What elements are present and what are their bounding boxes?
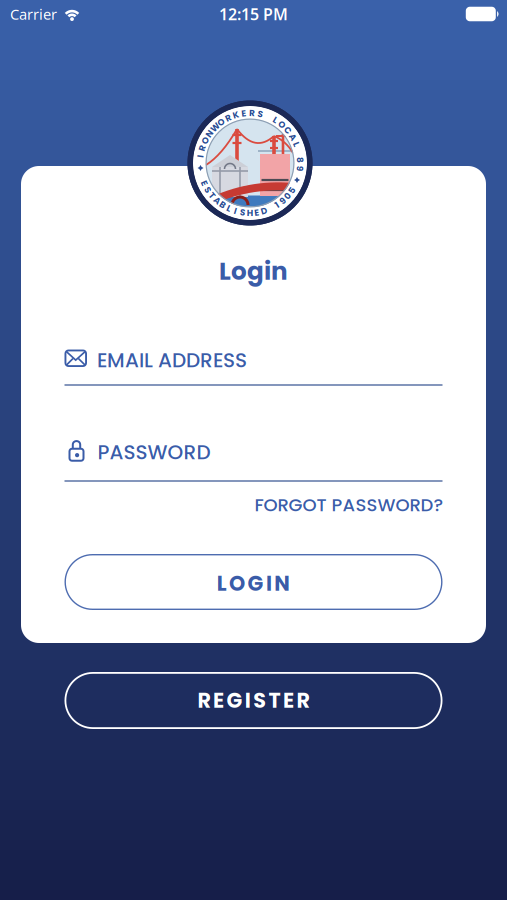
staticText: E bbox=[213, 686, 224, 715]
staticText: W bbox=[210, 121, 219, 133]
staticText: I bbox=[234, 205, 237, 217]
staticText: S bbox=[240, 206, 245, 219]
staticText: E bbox=[254, 206, 259, 219]
staticText: 8 bbox=[297, 154, 303, 166]
staticText: N bbox=[206, 127, 213, 140]
staticText: L bbox=[217, 569, 227, 598]
button[interactable]: FORGOT PASSWORD? bbox=[254, 492, 443, 518]
staticText: C bbox=[284, 124, 291, 136]
button[interactable]: R bbox=[64, 672, 442, 729]
staticText: R bbox=[199, 142, 205, 154]
staticText: B bbox=[220, 199, 226, 211]
button[interactable]: L bbox=[64, 554, 442, 610]
staticText: R bbox=[225, 112, 231, 124]
staticText: O bbox=[229, 569, 245, 598]
staticText: E bbox=[283, 686, 294, 715]
staticText: I bbox=[266, 569, 272, 598]
staticText: D bbox=[261, 205, 267, 217]
staticText: T bbox=[269, 686, 281, 715]
staticText: S bbox=[253, 686, 266, 715]
staticText: O bbox=[218, 116, 225, 128]
staticText: L bbox=[227, 202, 231, 214]
staticText: S bbox=[258, 108, 263, 120]
staticText: PASSWORD bbox=[97, 438, 210, 466]
staticText: S bbox=[205, 183, 210, 196]
staticText: I bbox=[199, 150, 202, 162]
staticText: 0 bbox=[285, 190, 291, 202]
staticText: 9 bbox=[297, 162, 302, 174]
staticText: H bbox=[247, 207, 253, 219]
staticText: K bbox=[233, 109, 239, 121]
staticText: T bbox=[209, 189, 214, 201]
staticText: 5 bbox=[289, 184, 295, 196]
staticText: Login bbox=[219, 254, 288, 288]
staticText: A bbox=[214, 194, 220, 207]
staticText: FORGOT PASSWORD? bbox=[254, 492, 443, 518]
staticText: E bbox=[202, 177, 207, 189]
staticText: 12:15 PM bbox=[219, 3, 288, 25]
staticText: EMAIL ADDRESS bbox=[97, 346, 247, 374]
staticText: R bbox=[198, 686, 211, 715]
staticText: G bbox=[226, 686, 242, 715]
staticText: E bbox=[241, 107, 246, 119]
staticText: R bbox=[296, 686, 309, 715]
button[interactable]: Email address bbox=[64, 347, 442, 386]
staticText: O bbox=[278, 118, 285, 131]
staticText: 1 bbox=[275, 199, 278, 211]
staticText: A bbox=[290, 131, 296, 143]
staticText: R bbox=[249, 107, 255, 119]
staticText: 9 bbox=[280, 195, 285, 207]
staticText bbox=[269, 202, 271, 215]
staticText: L bbox=[273, 114, 277, 126]
staticText: I bbox=[245, 686, 251, 715]
staticText: L bbox=[294, 138, 298, 150]
staticText bbox=[298, 146, 300, 158]
staticText: Carrier bbox=[10, 4, 57, 24]
button[interactable]: Password bbox=[64, 439, 442, 482]
staticText: O bbox=[202, 134, 209, 147]
staticText: N bbox=[274, 569, 290, 598]
staticText: G bbox=[247, 569, 263, 598]
